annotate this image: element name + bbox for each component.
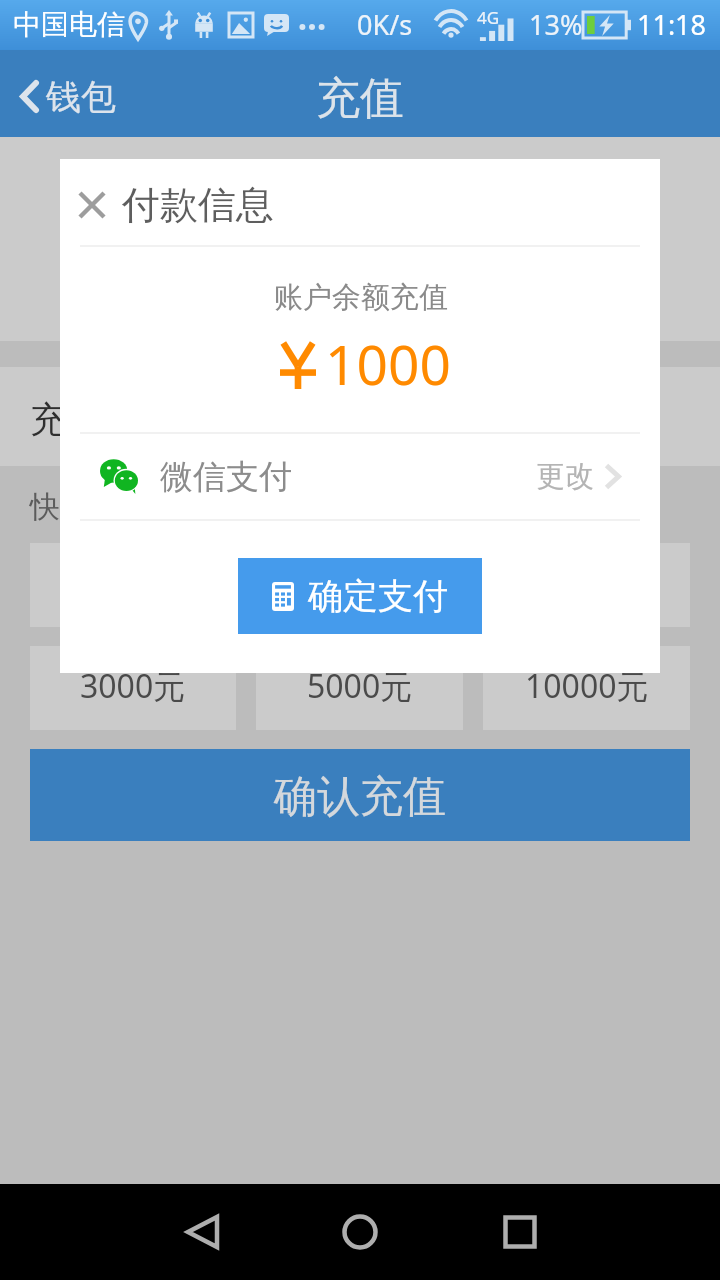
button[interactable]: 确定支付 [238, 558, 482, 634]
button[interactable]: Back [162, 1192, 242, 1272]
staticText: 3000元 [80, 664, 186, 708]
staticText: 钱包 [46, 75, 116, 119]
staticText: 确定支付 [308, 574, 448, 618]
staticText: 中国电信 [13, 7, 125, 42]
button[interactable]: Home [320, 1192, 400, 1272]
button[interactable]: 3000元 [30, 646, 236, 730]
button[interactable]: 1000元 [483, 543, 690, 627]
staticText: 充值金额 [30, 397, 174, 442]
button[interactable]: 5000元 [256, 646, 463, 730]
staticText: 4G [477, 6, 500, 29]
staticText: 13% [529, 6, 583, 43]
button[interactable]: Recents [480, 1192, 560, 1272]
button[interactable]: 钱包 [0, 62, 126, 126]
staticText: 微信支付 [160, 456, 292, 498]
staticText: 快速充值 [30, 488, 150, 526]
staticText: 11:18 [637, 6, 707, 43]
staticText: 账户余额充值 [61, 279, 661, 316]
button[interactable]: 100元 [30, 543, 236, 627]
button[interactable]: 10000元 [483, 646, 690, 730]
staticText: 更改 [536, 458, 594, 495]
button[interactable]: 确认充值 [30, 749, 690, 841]
staticText: 0K/s [357, 6, 413, 43]
staticText: 500元 [316, 561, 403, 605]
staticText: 10000元 [525, 664, 649, 708]
button[interactable]: 500元 [256, 543, 463, 627]
staticText: 付款信息 [122, 181, 274, 229]
staticText: 5000元 [307, 664, 413, 708]
staticText: 充值 [316, 71, 404, 126]
staticText: 确认充值 [274, 770, 446, 824]
button[interactable]: 关闭 [60, 173, 124, 237]
button[interactable]: 微信支付 [60, 434, 660, 519]
staticText: 1000 [325, 326, 451, 401]
